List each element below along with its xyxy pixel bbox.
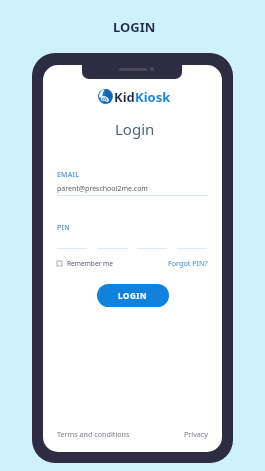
button[interactable]: Remember me [57,259,113,268]
staticText: Remember me [67,259,113,268]
staticText: Login [115,119,155,139]
button[interactable]: LOGIN [97,284,169,307]
staticText: parent@preschool2me.com [57,184,148,194]
staticText: PIN [57,223,70,233]
staticText: Kid [114,88,135,106]
staticText: Kiosk [135,88,171,106]
staticText: LOGIN [113,18,156,36]
other: KidKiosk logo [98,89,113,104]
button[interactable]: Terms and conditions [57,429,130,439]
button[interactable]: Forgot PIN? [168,258,208,268]
staticText: LOGIN [118,290,148,301]
button[interactable]: Privacy [184,429,208,439]
staticText: EMAIL [57,170,80,180]
